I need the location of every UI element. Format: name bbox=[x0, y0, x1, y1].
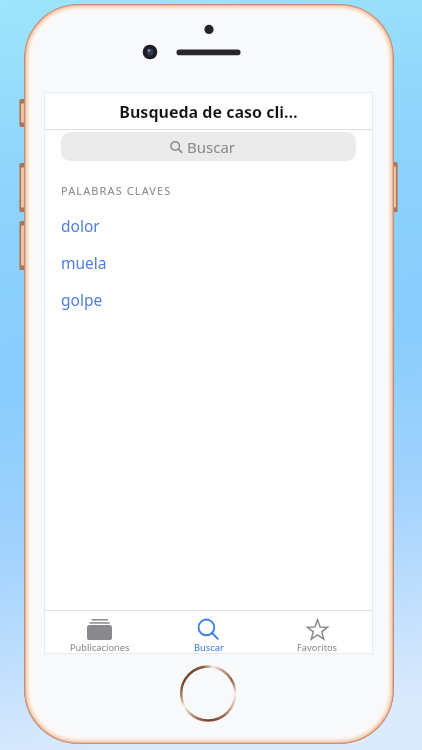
staticText: Buscar bbox=[187, 137, 236, 157]
button[interactable]: Busqueda de caso cli… bbox=[45, 93, 372, 130]
other: Favoritos bbox=[306, 619, 329, 640]
button[interactable]: muela bbox=[45, 244, 372, 281]
other: Buscar bbox=[198, 619, 219, 640]
staticText: Favoritos bbox=[297, 641, 338, 653]
button[interactable]: Favoritos bbox=[263, 611, 372, 653]
button[interactable]: golpe bbox=[45, 281, 372, 318]
staticText: muela bbox=[61, 252, 107, 273]
staticText: Buscar bbox=[194, 641, 224, 653]
button[interactable]: Buscar bbox=[154, 611, 263, 653]
other: Publicaciones bbox=[87, 619, 112, 640]
staticText: Publicaciones bbox=[70, 641, 130, 653]
button[interactable]: Publicaciones bbox=[45, 611, 154, 653]
button[interactable]: Buscar bbox=[61, 132, 356, 161]
staticText: golpe bbox=[61, 289, 103, 310]
staticText: PALABRAS CLAVES bbox=[61, 183, 172, 198]
button[interactable]: dolor bbox=[45, 207, 372, 244]
staticText: Busqueda de caso cli… bbox=[119, 101, 298, 123]
staticText: dolor bbox=[61, 215, 100, 236]
